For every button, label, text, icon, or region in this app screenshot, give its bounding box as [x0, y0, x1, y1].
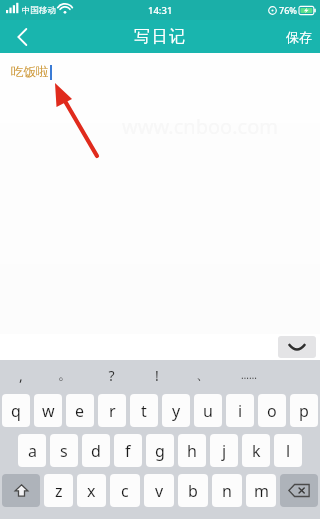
staticText: b [188, 480, 198, 502]
button[interactable]: e [66, 394, 94, 427]
button[interactable]: x [77, 474, 106, 507]
staticText: 中国移动 [22, 5, 56, 16]
button[interactable]: 、 [180, 360, 226, 390]
staticText: p [299, 400, 309, 422]
staticText: x [87, 480, 96, 502]
staticText: v [155, 480, 164, 502]
button[interactable]: h [178, 434, 206, 467]
staticText: l [286, 440, 291, 462]
staticText: f [125, 440, 131, 462]
button[interactable]: t [130, 394, 158, 427]
staticText: 吃饭啦 [11, 64, 49, 80]
staticText: ? [108, 366, 115, 385]
button[interactable]: a [18, 434, 46, 467]
button[interactable]: Hide keyboard [278, 336, 316, 358]
staticText: u [203, 400, 213, 422]
button[interactable]: n [212, 474, 242, 507]
staticText: d [91, 440, 101, 462]
button[interactable]: Shift [2, 474, 40, 507]
staticText: ! [155, 366, 159, 385]
button[interactable]: q [2, 394, 30, 427]
button[interactable]: b [178, 474, 208, 507]
staticText: q [11, 400, 21, 422]
staticText: 14:31 [148, 4, 173, 17]
button[interactable]: p [290, 394, 318, 427]
button[interactable]: v [144, 474, 174, 507]
button[interactable]: Back [0, 20, 44, 53]
staticText: , [19, 366, 23, 385]
staticText: i [238, 400, 243, 422]
button[interactable]: k [242, 434, 270, 467]
button[interactable]: Backspace [280, 474, 318, 507]
button[interactable]: j [210, 434, 238, 467]
button[interactable]: f [114, 434, 142, 467]
staticText: 、 [196, 366, 210, 384]
button[interactable]: z [44, 474, 73, 507]
staticText: g [155, 440, 165, 462]
staticText: w [42, 400, 55, 422]
staticText: 。 [58, 366, 72, 384]
staticText: 76% [279, 4, 297, 16]
staticText: r [109, 400, 116, 422]
button[interactable]: c [110, 474, 140, 507]
staticText: n [222, 480, 232, 502]
button[interactable]: s [50, 434, 78, 467]
staticText: m [254, 480, 269, 502]
staticText: z [55, 480, 63, 502]
button[interactable]: i [226, 394, 254, 427]
button[interactable]: ? [88, 360, 134, 390]
staticText: t [141, 400, 147, 422]
staticText: k [252, 440, 261, 462]
button[interactable]: 吃饭啦 [0, 53, 320, 334]
staticText: 保存 [286, 29, 312, 45]
button[interactable]: u [194, 394, 222, 427]
button[interactable]: , [0, 360, 42, 390]
staticText: 写日记 [134, 27, 187, 47]
staticText: c [121, 480, 129, 502]
button[interactable]: 保存 [286, 29, 312, 45]
staticText: e [75, 400, 85, 422]
button[interactable]: r [98, 394, 126, 427]
button[interactable]: 。 [42, 360, 88, 390]
staticText: …… [241, 368, 257, 382]
button[interactable]: ! [134, 360, 180, 390]
button[interactable]: g [146, 434, 174, 467]
staticText: o [267, 400, 277, 422]
button[interactable]: d [82, 434, 110, 467]
staticText: h [187, 440, 197, 462]
button[interactable]: …… [226, 360, 272, 390]
button[interactable]: o [258, 394, 286, 427]
button[interactable]: y [162, 394, 190, 427]
button[interactable]: w [34, 394, 62, 427]
button[interactable]: m [246, 474, 276, 507]
button[interactable]: l [274, 434, 302, 467]
staticText: a [28, 440, 37, 462]
staticText: y [172, 400, 181, 422]
staticText: j [222, 440, 227, 462]
staticText: s [60, 440, 68, 462]
